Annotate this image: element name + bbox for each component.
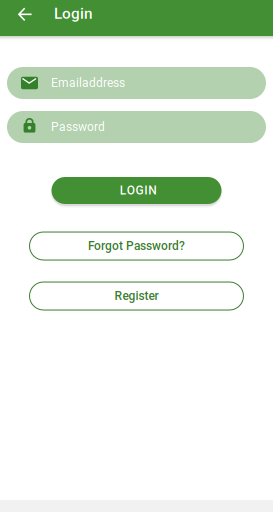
- button[interactable]: Back: [11, 0, 39, 27]
- button[interactable]: Register: [29, 282, 243, 310]
- staticText: Emailaddress: [51, 76, 125, 90]
- staticText: Forgot Password?: [88, 239, 185, 253]
- staticText: LOGIN: [120, 183, 157, 198]
- staticText: Register: [114, 289, 158, 303]
- button[interactable]: Forgot Password?: [29, 232, 243, 260]
- staticText: Password: [51, 120, 105, 134]
- staticText: Login: [54, 4, 93, 22]
- button[interactable]: LOGIN: [51, 177, 221, 204]
